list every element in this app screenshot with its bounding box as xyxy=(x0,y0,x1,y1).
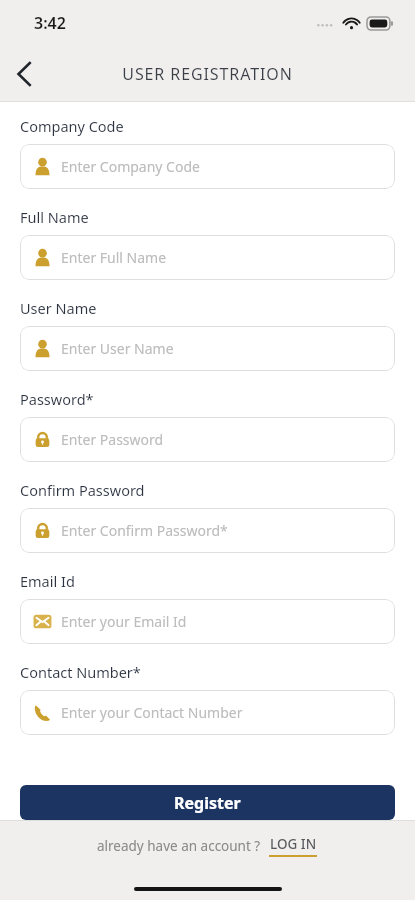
staticText: Full Name xyxy=(20,207,89,227)
staticText: already have an account ? xyxy=(97,837,261,855)
button[interactable]: Enter Password xyxy=(20,417,395,462)
staticText: LOG IN xyxy=(270,835,317,853)
staticText: Enter Confirm Password* xyxy=(61,521,228,540)
staticText: Enter your Email Id xyxy=(61,612,187,631)
button[interactable]: Register xyxy=(20,785,395,820)
button[interactable]: Enter your Contact Number xyxy=(20,690,395,735)
button[interactable]: LOG IN xyxy=(268,835,318,857)
staticText: Email Id xyxy=(20,571,75,591)
button[interactable]: Back xyxy=(0,50,48,98)
staticText: Password* xyxy=(20,389,94,409)
staticText: User Name xyxy=(20,298,97,318)
staticText: Register xyxy=(174,792,241,814)
staticText: Company Code xyxy=(20,116,124,136)
staticText: Enter Company Code xyxy=(61,157,200,176)
staticText: Confirm Password xyxy=(20,480,145,500)
button[interactable]: Enter User Name xyxy=(20,326,395,371)
staticText: Enter Password xyxy=(61,430,164,449)
staticText: Contact Number* xyxy=(20,662,141,682)
button[interactable]: Enter Confirm Password* xyxy=(20,508,395,553)
staticText: Enter User Name xyxy=(61,339,174,358)
button[interactable]: Enter your Email Id xyxy=(20,599,395,644)
staticText: USER REGISTRATION xyxy=(122,63,293,85)
staticText: Enter Full Name xyxy=(61,248,167,267)
staticText: Enter your Contact Number xyxy=(61,703,243,722)
staticText: 3:42 xyxy=(34,12,66,34)
button[interactable]: Enter Company Code xyxy=(20,144,395,189)
button[interactable]: Enter Full Name xyxy=(20,235,395,280)
